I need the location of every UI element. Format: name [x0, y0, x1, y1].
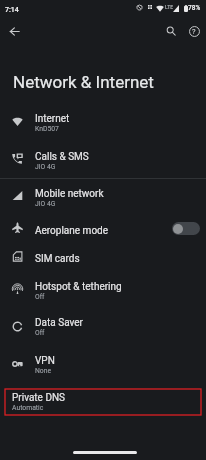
staticText: SIM cards	[35, 253, 80, 265]
staticText: None	[35, 367, 52, 375]
button[interactable]: Data Saver	[0, 308, 206, 345]
staticText: Mobile network	[35, 188, 104, 200]
staticText: Internet	[35, 113, 70, 125]
staticText: Calls & SMS	[35, 151, 89, 163]
staticText: Aeroplane mode	[35, 225, 109, 237]
staticText: 78%	[188, 4, 201, 12]
staticText: Automatic	[12, 404, 44, 412]
button[interactable]: Calls & SMS	[0, 140, 206, 178]
staticText: Off	[35, 329, 45, 337]
button[interactable]: VPN	[0, 345, 206, 382]
staticText: KnD507	[35, 125, 59, 133]
staticText: ?	[192, 27, 196, 36]
staticText: LTE	[165, 4, 174, 10]
button[interactable]: Back	[4, 21, 24, 41]
staticText: Hotspot & tethering	[35, 281, 122, 293]
staticText: Data Saver	[35, 317, 83, 329]
button[interactable]: Aeroplane mode	[0, 215, 206, 243]
button[interactable]: Help	[185, 22, 203, 40]
button[interactable]	[172, 222, 200, 235]
button[interactable]: Search	[162, 22, 180, 40]
button[interactable]: Private DNS	[5, 389, 201, 415]
staticText: 7:14	[5, 6, 19, 14]
staticText: Off	[35, 293, 45, 301]
staticText: VPN	[35, 355, 55, 367]
button[interactable]: SIM cards	[0, 243, 206, 271]
button[interactable]: Mobile network	[0, 179, 206, 215]
staticText: JIO 4G	[35, 200, 56, 208]
button[interactable]: Internet	[0, 103, 206, 140]
button[interactable]: Hotspot & tethering	[0, 271, 206, 308]
staticText: JIO 4G	[35, 163, 56, 171]
staticText: Private DNS	[12, 392, 66, 404]
staticText: Network & Internet	[13, 72, 154, 92]
